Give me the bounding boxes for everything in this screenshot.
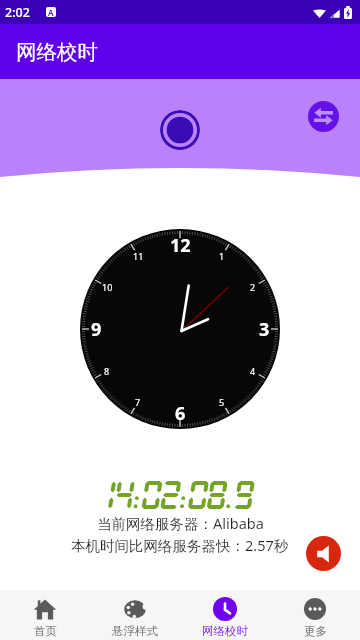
- button[interactable]: Switch time server: [308, 101, 339, 132]
- staticText: 10: [102, 281, 113, 293]
- staticText: 更多: [304, 624, 327, 638]
- staticText: 7: [135, 396, 141, 408]
- button[interactable]: 悬浮样式: [90, 590, 180, 640]
- button[interactable]: 首页: [0, 590, 90, 640]
- staticText: 1: [219, 250, 225, 262]
- staticText: 2: [250, 281, 256, 293]
- staticText: 本机时间比网络服务器快：2.57秒: [71, 535, 289, 555]
- staticText: A: [48, 7, 54, 17]
- staticText: 悬浮样式: [112, 624, 158, 638]
- button[interactable]: Play sound: [306, 536, 341, 571]
- staticText: 当前网络服务器：Alibaba: [97, 513, 264, 533]
- staticText: 9: [91, 317, 102, 342]
- staticText: 首页: [34, 624, 57, 638]
- button[interactable]: 网络校时: [180, 590, 270, 640]
- staticText: 网络校时: [16, 39, 98, 65]
- staticText: 11: [133, 250, 144, 262]
- staticText: 5: [219, 396, 225, 408]
- button[interactable]: 更多: [270, 590, 360, 640]
- staticText: 网络校时: [202, 624, 248, 638]
- staticText: 4: [250, 365, 256, 377]
- staticText: 3: [259, 317, 270, 342]
- staticText: 8: [104, 365, 110, 377]
- staticText: 12: [170, 233, 191, 258]
- staticText: 2:02: [5, 4, 30, 21]
- staticText: 6: [175, 401, 186, 426]
- button[interactable]: Sync now: [160, 110, 200, 150]
